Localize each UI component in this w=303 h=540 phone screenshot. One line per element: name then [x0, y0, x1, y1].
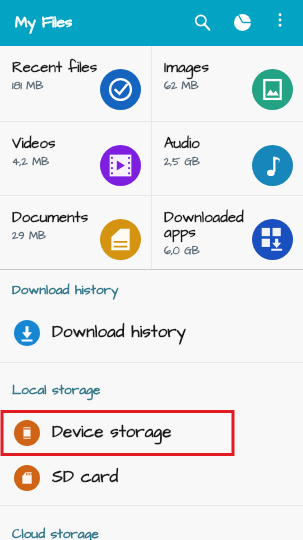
staticText: Documents: [12, 207, 89, 228]
staticText: Audio: [164, 133, 200, 154]
button[interactable]: SD card: [0, 455, 303, 500]
staticText: Download history: [52, 320, 186, 344]
staticText: Images: [164, 57, 209, 78]
button[interactable]: Videos: [0, 122, 151, 195]
staticText: Cloud storage: [12, 525, 99, 540]
staticText: 6,0 GB: [164, 243, 200, 258]
staticText: 2,5 GB: [164, 154, 200, 169]
button[interactable]: More options: [266, 6, 294, 34]
staticText: Local storage: [12, 381, 101, 400]
staticText: SD card: [52, 465, 119, 489]
staticText: 4,2 MB: [12, 154, 50, 169]
button[interactable]: Search: [186, 6, 218, 38]
staticText: Device storage: [52, 420, 172, 444]
button[interactable]: Storage analysis: [226, 6, 258, 38]
button[interactable]: Images: [152, 46, 303, 121]
staticText: My Files: [15, 12, 73, 33]
button[interactable]: Downloaded apps: [152, 196, 303, 269]
button[interactable]: Recent files: [0, 46, 151, 121]
staticText: 62 MB: [164, 78, 199, 93]
button[interactable]: Download history: [0, 310, 303, 355]
button[interactable]: Device storage: [0, 410, 303, 455]
staticText: Downloaded apps: [164, 207, 255, 243]
button[interactable]: Documents: [0, 196, 151, 269]
staticText: Recent files: [12, 57, 98, 78]
staticText: Videos: [12, 133, 56, 154]
staticText: Download history: [12, 281, 119, 300]
button[interactable]: Audio: [152, 122, 303, 195]
staticText: 181 MB: [12, 78, 44, 93]
staticText: 29 MB: [12, 228, 46, 243]
